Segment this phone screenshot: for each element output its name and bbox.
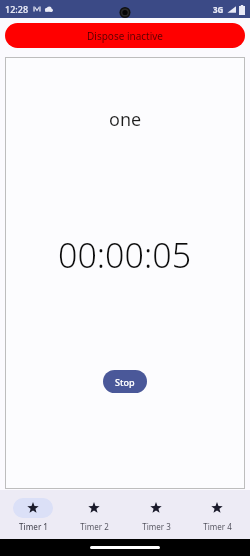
staticText: Timer 4: [203, 521, 232, 532]
staticText: Stop: [115, 376, 135, 388]
button[interactable]: Stop: [103, 370, 147, 393]
button[interactable]: Dispose inactive: [5, 23, 245, 48]
button[interactable]: Timer 2: [65, 498, 123, 532]
staticText: Timer 2: [80, 521, 109, 532]
button[interactable]: Timer 1: [4, 498, 62, 532]
staticText: 12:28: [5, 3, 29, 15]
staticText: Timer 1: [19, 521, 48, 532]
button[interactable]: Timer 3: [127, 498, 185, 532]
staticText: 00:00:05: [58, 232, 192, 278]
staticText: Dispose inactive: [87, 29, 163, 43]
staticText: Timer 3: [142, 521, 171, 532]
button[interactable]: Timer 4: [188, 498, 246, 532]
staticText: 3G: [213, 4, 224, 15]
staticText: one: [109, 107, 142, 132]
